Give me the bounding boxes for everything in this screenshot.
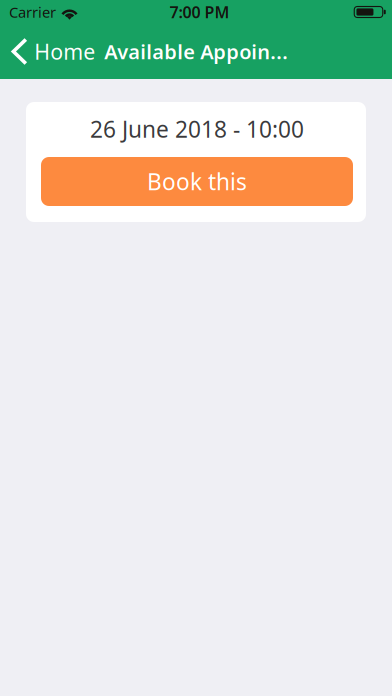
staticText: Home: [34, 37, 95, 66]
staticText: Available Appoin...: [104, 38, 288, 65]
staticText: Book this: [147, 166, 247, 196]
staticText: 7:00 PM: [169, 1, 229, 23]
staticText: Carrier: [9, 2, 56, 22]
button[interactable]: Book this: [41, 157, 353, 206]
button[interactable]: Home: [0, 24, 99, 79]
staticText: 26 June 2018 - 10:00: [90, 114, 304, 144]
